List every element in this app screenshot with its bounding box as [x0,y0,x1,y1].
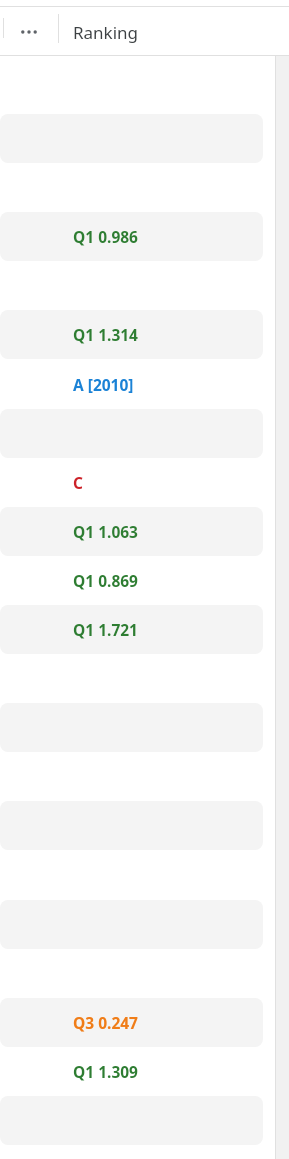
button[interactable]: Q3 0.247 [0,998,263,1047]
button[interactable]: C [0,458,263,507]
staticText: Q1 1.309 [73,1061,138,1082]
staticText: Ranking [73,21,139,44]
button[interactable]: Q1 1.063 [0,507,263,556]
staticText: A [2010] [73,374,134,395]
staticText: Q1 0.986 [73,226,138,247]
staticText: Q1 1.314 [73,324,138,345]
button[interactable]: Ranking [59,7,275,57]
staticText: Q3 0.247 [73,1012,138,1033]
staticText: Q1 1.721 [73,619,138,640]
staticText: Q1 1.063 [73,521,138,542]
button[interactable]: Q1 1.309 [0,1047,263,1096]
button[interactable]: Q1 1.314 [0,310,263,359]
button[interactable]: A [2010] [0,360,263,409]
button[interactable]: Q1 0.986 [0,212,263,261]
staticText: Q1 0.869 [73,570,138,591]
staticText: C [73,472,83,493]
button[interactable]: Q1 1.721 [0,605,263,654]
button[interactable]: More options [12,7,46,57]
button[interactable]: Q1 0.869 [0,556,263,605]
